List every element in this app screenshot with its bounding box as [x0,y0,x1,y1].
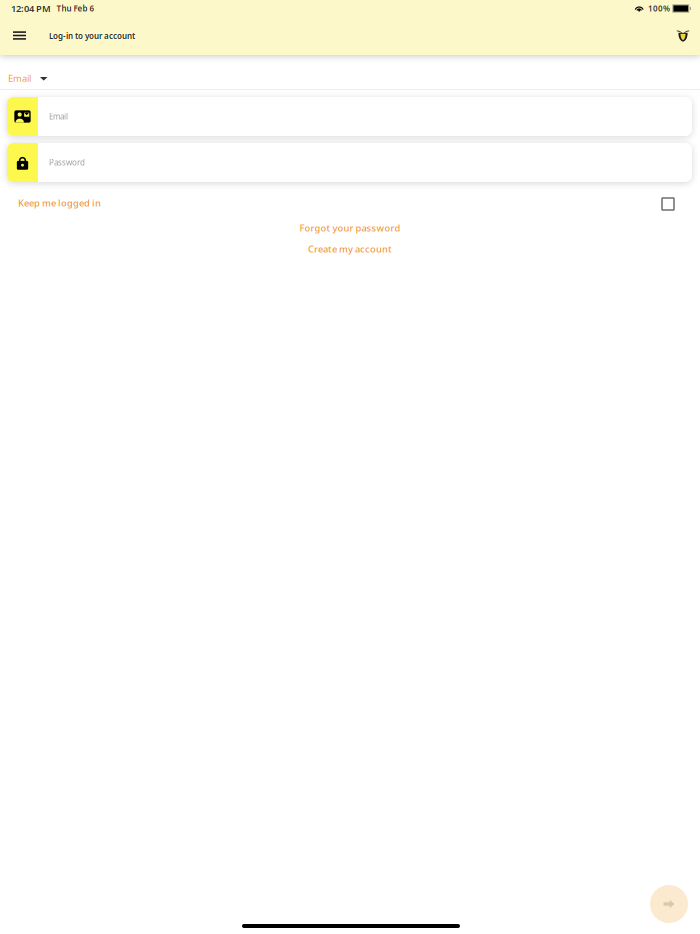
button[interactable]: Forgot your password [0,220,700,236]
button[interactable]: Keep me logged in [658,194,678,214]
staticText: Keep me logged in [18,197,101,209]
staticText: Password [49,157,85,168]
staticText: Log-in to your account [49,31,135,41]
staticText: 100% [648,3,670,14]
button[interactable]: Continue [650,885,688,923]
staticText: Email [49,111,68,122]
button[interactable]: Application logo [668,21,698,51]
button[interactable]: Create my account [0,241,700,257]
button[interactable]: Keep me logged in [18,195,104,211]
staticText: Email [8,72,31,84]
staticText: 12:04 PM [11,2,51,15]
button[interactable]: Menu [3,19,36,52]
button[interactable]: Email [7,64,63,92]
button[interactable]: Log-in to your account [49,25,159,47]
staticText: Forgot your password [299,222,400,234]
staticText: Create my account [308,243,392,255]
staticText: Thu Feb 6 [56,3,94,14]
